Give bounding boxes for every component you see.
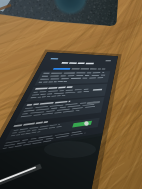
- button[interactable]: Smartphone on a wooden desk showing a da…: [0, 0, 142, 189]
